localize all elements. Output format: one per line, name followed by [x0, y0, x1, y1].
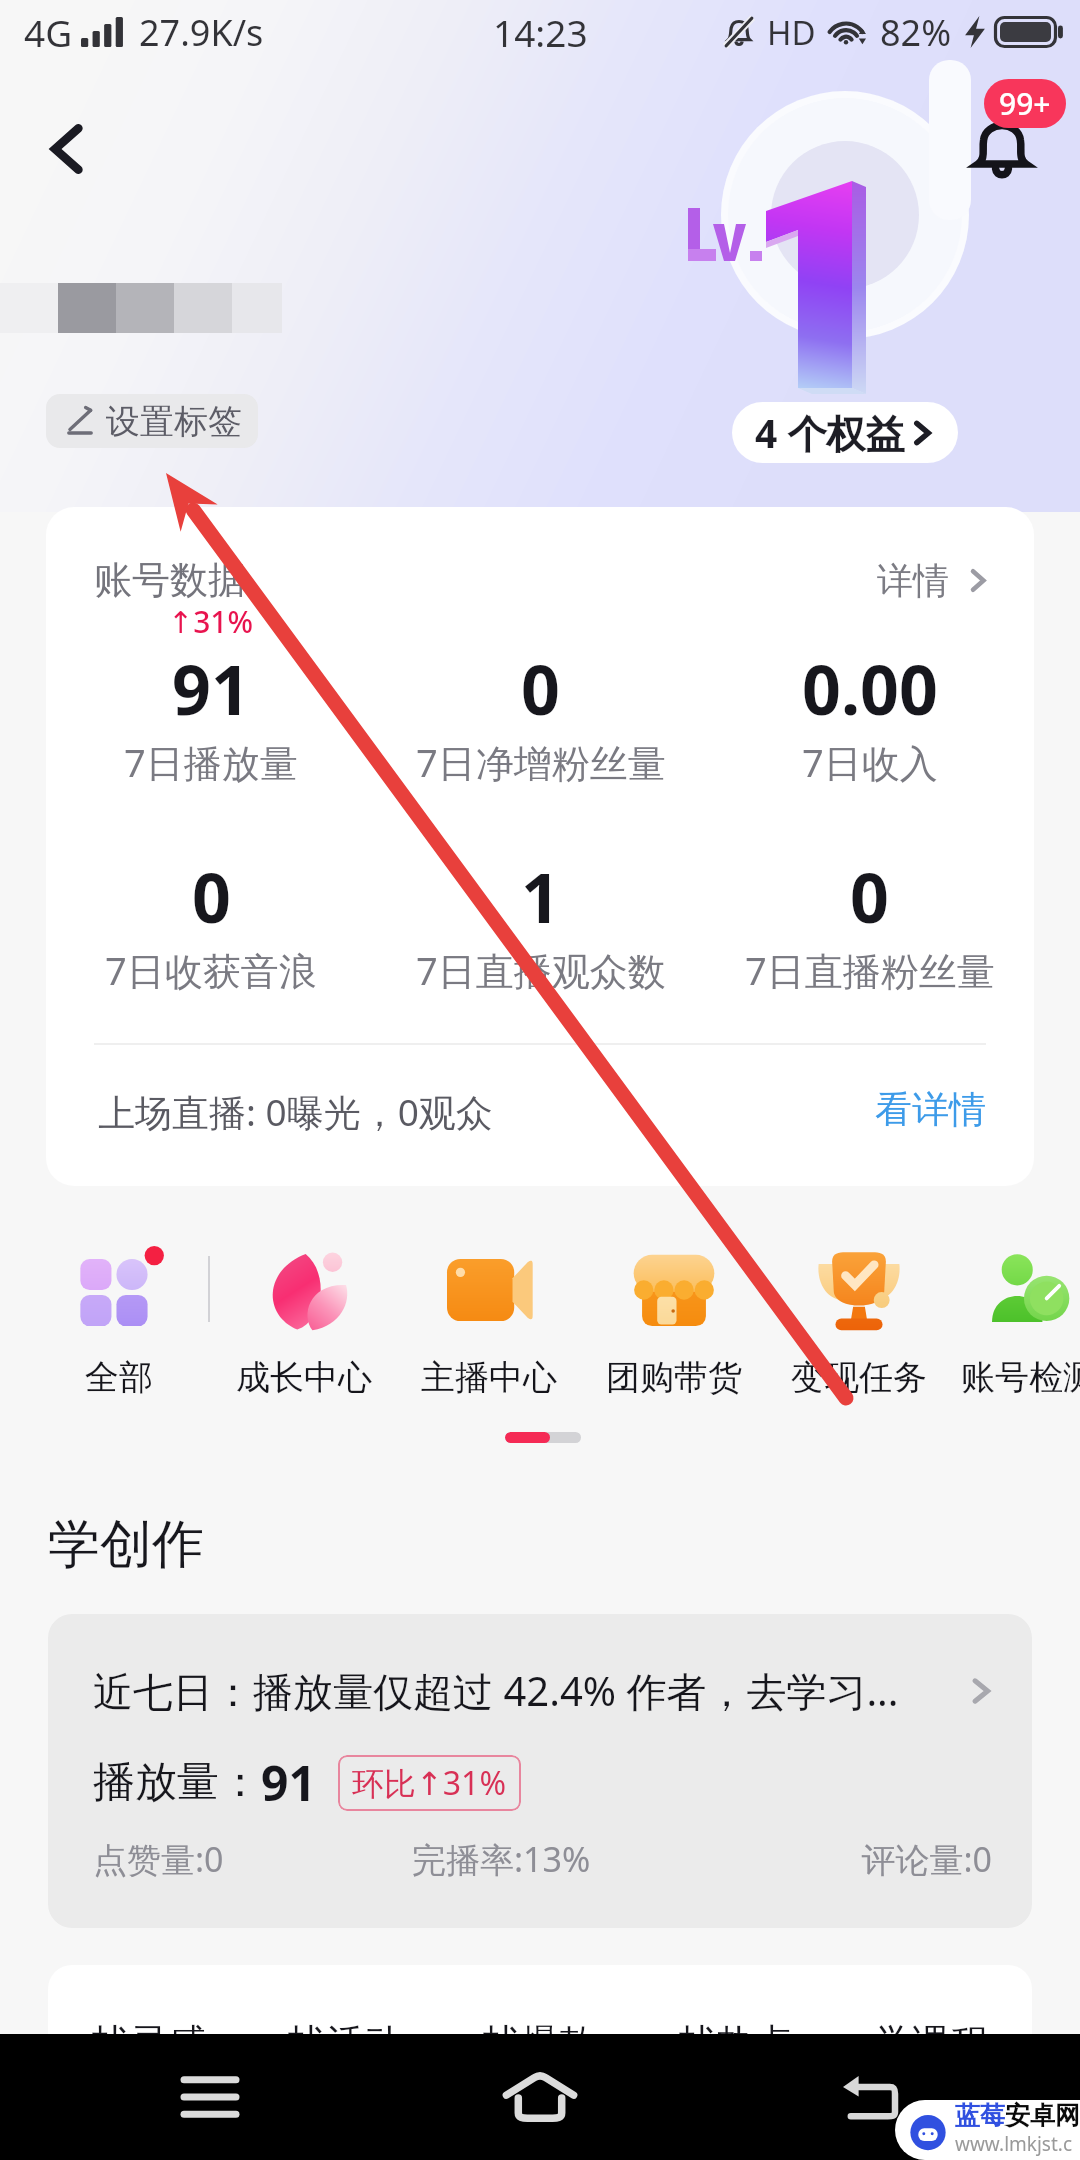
button[interactable]: 变现任务 — [766, 1246, 951, 1399]
button[interactable]: 找爆款 — [483, 2019, 597, 2067]
staticText: 82% — [880, 8, 952, 57]
staticText: 7日直播粉丝量 — [745, 944, 995, 996]
button[interactable]: 设置标签 — [46, 394, 258, 448]
staticText: 播放量： — [93, 1756, 261, 1809]
button[interactable]: Home — [480, 2037, 600, 2157]
staticText: 4 个权益 — [755, 406, 905, 459]
staticText: 上场直播: 0曝光，0观众 — [98, 1086, 493, 1137]
staticText: 完播率:13% — [412, 1836, 731, 1882]
staticText: 7日净增粉丝量 — [416, 736, 666, 788]
staticText: 详情 — [877, 558, 949, 603]
button[interactable]: 找活动 — [288, 2019, 402, 2067]
staticText: 变现任务 — [791, 1356, 927, 1399]
button[interactable]: Back — [22, 104, 112, 194]
staticText: 学创作 — [48, 1512, 204, 1578]
button[interactable]: 成长中心 — [211, 1246, 396, 1399]
button[interactable]: 0.00 — [705, 598, 1034, 788]
button[interactable]: 找热点 — [679, 2019, 793, 2067]
button[interactable]: 0 — [376, 598, 705, 788]
staticText: 评论量:0 — [731, 1836, 992, 1882]
staticText: 91 — [261, 1750, 316, 1815]
button[interactable]: 账号检测 — [951, 1246, 1080, 1399]
staticText: 99+ — [999, 83, 1051, 124]
button[interactable]: 找灵感 — [92, 2019, 206, 2067]
staticText: 7日收入 — [802, 736, 938, 788]
staticText: 0 — [521, 642, 560, 735]
staticText: 7日收获音浪 — [105, 944, 317, 996]
staticText: 7日直播观众数 — [416, 944, 666, 996]
staticText: 设置标签 — [106, 400, 242, 443]
button[interactable]: Back — [809, 2037, 929, 2157]
staticText: ↑31% — [168, 601, 254, 642]
staticText: 27.9K/s — [139, 8, 264, 57]
staticText: 0.00 — [802, 642, 938, 735]
button[interactable]: 4 个权益 — [732, 402, 958, 463]
button[interactable]: 学课程 — [874, 2019, 988, 2067]
button[interactable]: 0 — [46, 806, 376, 996]
staticText: 账号检测 — [961, 1356, 1080, 1399]
staticText: 团购带货 — [606, 1356, 742, 1399]
staticText: 环比↑31% — [352, 1761, 507, 1805]
staticText: 成长中心 — [236, 1356, 372, 1399]
staticText: 账号数据 — [94, 556, 246, 604]
staticText: 0 — [850, 850, 889, 943]
button[interactable]: Menu — [150, 2037, 270, 2157]
staticText: 近七日：播放量仅超过 42.4% 作者，去学习... — [93, 1663, 899, 1718]
staticText: HD — [767, 10, 816, 55]
staticText: www.lmkjst.com — [955, 2131, 1080, 2160]
button[interactable]: ↑31% — [46, 598, 376, 788]
staticText: 0 — [192, 850, 231, 943]
staticText: 全部 — [85, 1356, 153, 1399]
button[interactable]: 团购带货 — [581, 1246, 766, 1399]
staticText: 91 — [172, 642, 250, 735]
button[interactable]: Notifications — [952, 98, 1052, 198]
button[interactable]: 看详情 — [875, 1086, 986, 1133]
staticText: 14:23 — [493, 7, 588, 57]
staticText: 蓝莓 — [955, 2100, 1005, 2131]
button[interactable]: 0 — [705, 806, 1034, 996]
button[interactable]: 1 — [376, 806, 705, 996]
staticText: 主播中心 — [421, 1356, 557, 1399]
button[interactable]: 详情 — [877, 558, 990, 603]
staticText: 4G — [24, 7, 73, 57]
button[interactable]: 主播中心 — [396, 1246, 581, 1399]
button[interactable]: 全部 — [26, 1246, 211, 1399]
staticText: 7日播放量 — [124, 736, 298, 788]
staticText: 安卓网 — [1005, 2100, 1080, 2131]
button[interactable]: 近七日：播放量仅超过 42.4% 作者，去学习... — [48, 1614, 1032, 1928]
staticText: 1 — [521, 850, 560, 943]
staticText: 点赞量:0 — [93, 1836, 412, 1882]
